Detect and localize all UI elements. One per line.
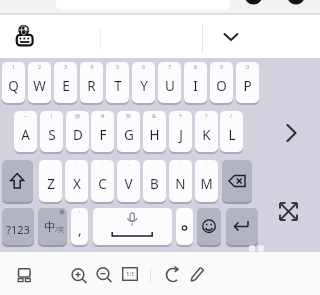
staticText: X	[73, 175, 81, 193]
button[interactable]: O	[210, 62, 233, 103]
staticText: D	[73, 126, 83, 144]
button[interactable]	[164, 266, 182, 284]
button[interactable]: T	[106, 62, 129, 103]
staticText: !	[51, 112, 53, 119]
staticText: Z	[47, 175, 55, 193]
button[interactable]: N	[169, 160, 192, 202]
staticText: B	[150, 175, 159, 193]
staticText: ·	[50, 161, 52, 168]
button[interactable]	[197, 208, 221, 245]
button[interactable]	[16, 266, 34, 284]
button[interactable]: R	[80, 62, 103, 103]
button[interactable]: Y	[132, 62, 155, 103]
button[interactable]: A	[14, 111, 37, 152]
button[interactable]	[223, 31, 239, 43]
button[interactable]	[2, 160, 33, 202]
staticText: C	[98, 175, 107, 193]
button[interactable]: C	[91, 160, 114, 202]
button[interactable]	[282, 120, 302, 146]
staticText: N	[175, 175, 186, 193]
button[interactable]: ,	[71, 208, 88, 245]
button[interactable]: D	[66, 111, 89, 152]
staticText: T	[114, 77, 122, 95]
staticText: V	[124, 175, 133, 193]
staticText: 4	[90, 63, 94, 70]
staticText: ·	[180, 161, 182, 168]
staticText: /	[230, 112, 233, 119]
staticText: *	[179, 112, 183, 119]
button[interactable]: P	[236, 62, 259, 103]
button[interactable]: Q	[2, 62, 25, 103]
staticText: ·	[128, 161, 130, 168]
button[interactable]: J	[169, 111, 192, 152]
button[interactable]	[176, 208, 193, 245]
staticText: ?123	[6, 222, 30, 237]
button[interactable]	[222, 160, 252, 202]
button[interactable]	[15, 24, 45, 48]
staticText: ·	[102, 161, 104, 168]
button[interactable]: B	[143, 160, 166, 202]
staticText: ·	[76, 161, 78, 168]
staticText: 7	[168, 63, 172, 70]
staticText: E	[62, 77, 70, 95]
staticText: K	[202, 126, 211, 144]
staticText: M	[200, 175, 213, 193]
staticText: I	[193, 77, 198, 95]
button[interactable]: I	[184, 62, 207, 103]
button[interactable]: H	[143, 111, 166, 152]
button[interactable]: L	[220, 111, 243, 152]
staticText: Y	[140, 77, 148, 95]
button[interactable]: V	[117, 160, 140, 202]
button[interactable]	[226, 208, 258, 245]
button[interactable]: F	[91, 111, 114, 152]
button[interactable]	[93, 208, 172, 245]
staticText: ·	[154, 161, 156, 168]
button[interactable]: U	[158, 62, 181, 103]
staticText: F	[99, 126, 107, 144]
staticText: S	[48, 126, 56, 144]
staticText: 3	[64, 63, 68, 70]
staticText: W	[33, 77, 46, 95]
staticText: ,	[78, 220, 82, 239]
staticText: Q	[8, 77, 19, 95]
staticText: 9	[220, 63, 224, 70]
button[interactable]	[278, 201, 299, 222]
staticText: 1:1	[126, 270, 135, 278]
staticText: ?	[205, 112, 208, 119]
button[interactable]: S	[40, 111, 63, 152]
button[interactable]: W	[28, 62, 51, 103]
button[interactable]	[189, 265, 207, 283]
button[interactable]: G	[117, 111, 140, 152]
staticText: 1	[12, 63, 16, 70]
staticText: #	[101, 112, 105, 119]
staticText: O	[216, 77, 227, 95]
staticText: 5	[116, 63, 120, 70]
staticText: 0	[246, 63, 250, 70]
staticText: 中	[44, 219, 56, 234]
staticText: H	[149, 126, 160, 144]
button[interactable]: K	[195, 111, 218, 152]
staticText: /英	[55, 225, 65, 235]
staticText: ~	[24, 112, 28, 119]
staticText: J	[179, 126, 183, 144]
button[interactable]: E	[54, 62, 77, 103]
staticText: 8	[194, 63, 198, 70]
button[interactable]: Z	[39, 160, 62, 202]
staticText: ’	[79, 209, 80, 216]
button[interactable]: ?123	[2, 208, 34, 245]
staticText: R	[87, 77, 96, 95]
staticText: &	[152, 112, 157, 119]
staticText: G	[124, 126, 134, 144]
button[interactable]: M	[195, 160, 218, 202]
staticText: @	[75, 112, 80, 119]
button[interactable]: 中	[38, 208, 67, 245]
button[interactable]: 1:1	[122, 267, 138, 281]
staticText: 6	[142, 63, 146, 70]
staticText: L	[228, 126, 236, 144]
staticText: P	[243, 77, 252, 95]
button[interactable]: X	[65, 160, 88, 202]
staticText: %	[126, 112, 131, 119]
button[interactable]	[68, 265, 90, 287]
staticText: U	[165, 77, 175, 95]
button[interactable]	[93, 264, 115, 286]
